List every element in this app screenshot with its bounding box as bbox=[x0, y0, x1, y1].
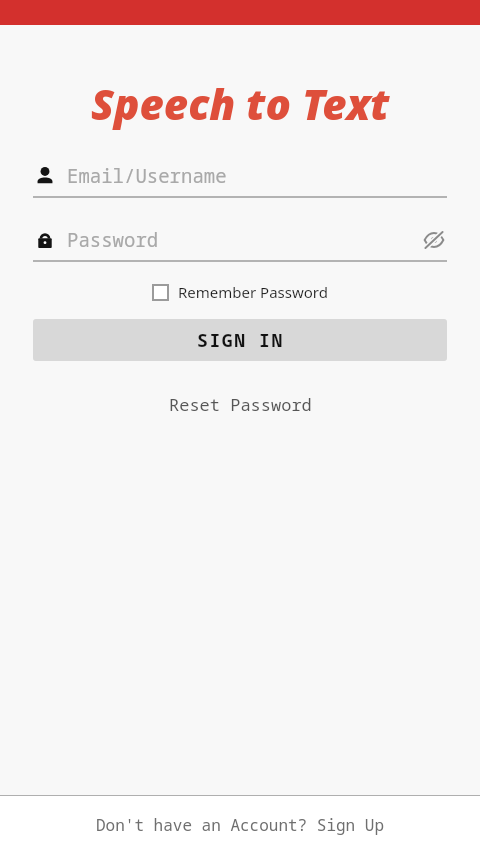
other: Username bbox=[33, 164, 57, 188]
staticText: Password bbox=[67, 227, 421, 253]
button[interactable]: Don't have an Account? Sign Up bbox=[86, 808, 395, 842]
button[interactable]: Username bbox=[33, 160, 447, 192]
button[interactable]: Remember Password bbox=[152, 279, 328, 305]
staticText: Email/Username bbox=[67, 163, 447, 189]
staticText: Remember Password bbox=[178, 282, 328, 302]
staticText: Speech to Text bbox=[91, 75, 390, 132]
staticText: Don't have an Account? Sign Up bbox=[96, 814, 385, 836]
button[interactable]: Reset Password bbox=[161, 389, 320, 420]
staticText: Reset Password bbox=[169, 393, 312, 416]
button[interactable]: SIGN IN bbox=[33, 319, 447, 361]
other: Password bbox=[33, 228, 57, 252]
button[interactable]: Show password bbox=[421, 227, 447, 253]
staticText: SIGN IN bbox=[197, 328, 284, 353]
button[interactable]: Password bbox=[33, 224, 447, 256]
